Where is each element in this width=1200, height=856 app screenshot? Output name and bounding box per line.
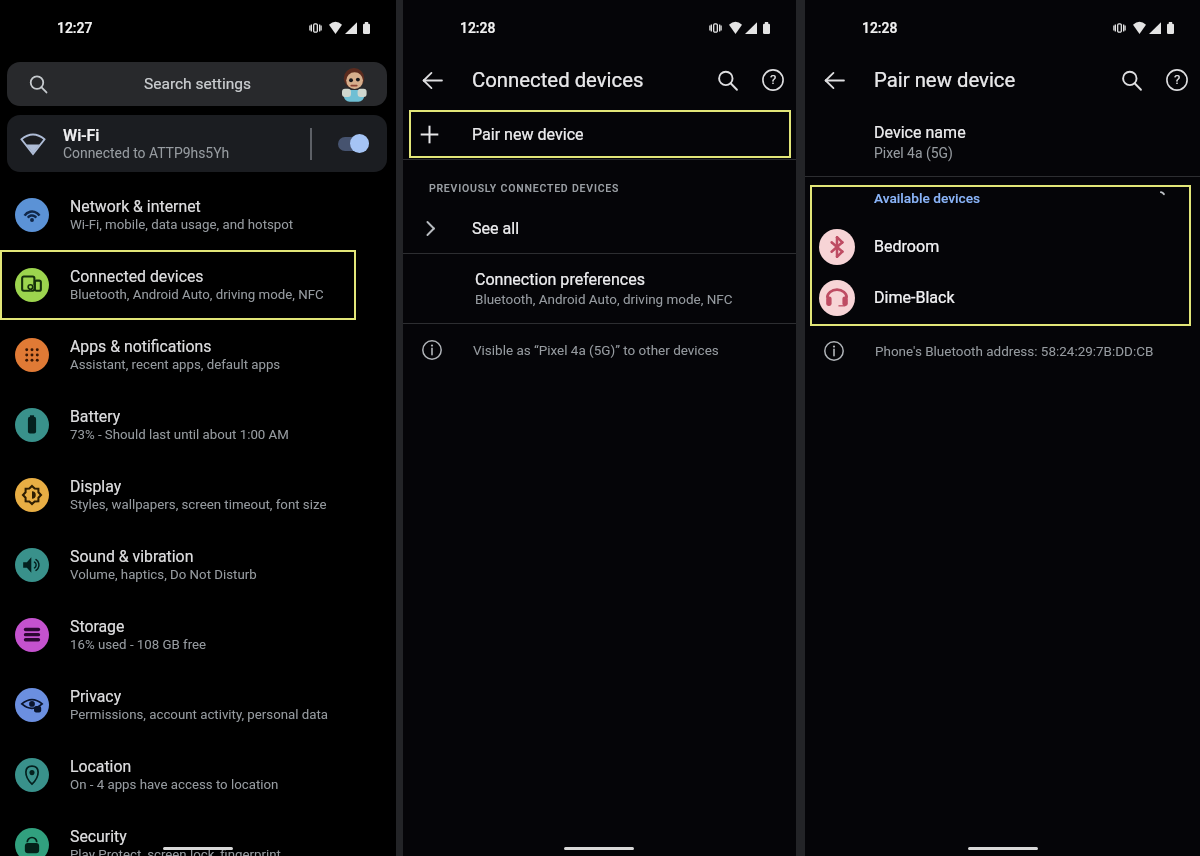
staticText: Play Protect, screen lock, fingerprint [70,847,281,856]
button[interactable]: Search settings [7,62,387,106]
staticText: Wi-Fi [63,126,100,145]
other: Search [29,75,48,94]
staticText: 73% - Should last until about 1:00 AM [70,427,289,443]
staticText: Visible as “Pixel 4a (5G)” to other devi… [473,342,719,358]
button[interactable]: Back [413,61,451,99]
button[interactable]: Back [815,61,853,99]
staticText: ? [1174,72,1181,88]
staticText: PREVIOUSLY CONNECTED DEVICES [429,182,620,194]
staticText: 12:27 [57,20,93,36]
staticText: 12:28 [460,20,496,36]
button[interactable]: Search [1112,61,1150,99]
staticText: Pair new device [874,68,1112,92]
button[interactable]: Search [708,61,746,99]
button[interactable]: Sound & vibration [0,530,396,600]
staticText: Connected devices [70,267,204,286]
staticText: Display [70,477,122,496]
staticText: Assistant, recent apps, default apps [70,357,281,373]
button[interactable]: Display [0,460,396,530]
staticText: ? [770,72,777,88]
staticText: Connection preferences [475,270,645,289]
button[interactable]: Wi-Fi [7,115,387,172]
staticText: Bedroom [874,237,940,256]
staticText: See all [472,219,520,237]
staticText: Storage [70,617,125,636]
staticText: Sound & vibration [70,547,194,566]
staticText: 12:28 [862,20,898,36]
button[interactable]: Connection preferences [403,254,796,323]
staticText: Battery [70,407,121,426]
button[interactable]: Security [0,810,396,856]
staticText: Security [70,827,127,846]
staticText: Dime-Black [874,288,955,307]
staticText: Phone's Bluetooth address: 58:24:29:7B:D… [875,343,1154,359]
button[interactable]: Battery [0,390,396,460]
staticText: Permissions, account activity, personal … [70,707,329,723]
button[interactable]: Apps & notifications [0,320,396,390]
button[interactable]: Wi-Fi toggle [338,134,369,153]
staticText: Connected devices [472,68,708,92]
staticText: Bluetooth, Android Auto, driving mode, N… [475,291,733,307]
staticText: Pair new device [472,125,584,144]
staticText: Styles, wallpapers, screen timeout, font… [70,497,327,513]
staticText: Apps & notifications [70,337,212,356]
staticText: Search settings [144,75,251,93]
staticText: Connected to ATTP9hs5Yh [63,145,230,161]
staticText: Device name [874,123,966,142]
button[interactable]: Help [754,61,792,99]
button[interactable]: Pair new device [409,110,791,158]
button[interactable]: Network & internet [0,180,396,250]
staticText: On - 4 apps have access to location [70,777,279,793]
staticText: Available devices [874,190,981,206]
staticText: Network & internet [70,197,201,216]
button[interactable]: Bedroom [810,221,1191,272]
button[interactable]: Dime-Black [810,272,1191,323]
button[interactable]: Connected devices [0,250,396,320]
button[interactable]: Account [339,67,369,101]
staticText: Pixel 4a (5G) [874,145,953,161]
staticText: Bluetooth, Android Auto, driving mode, N… [70,287,324,303]
staticText: 16% used - 108 GB free [70,637,207,653]
staticText: Volume, haptics, Do Not Disturb [70,567,257,583]
button[interactable]: Help [1158,61,1196,99]
staticText: Location [70,757,132,776]
staticText: Wi-Fi, mobile, data usage, and hotspot [70,217,294,233]
button[interactable]: Location [0,740,396,810]
staticText: Privacy [70,687,122,706]
button[interactable]: Privacy [0,670,396,740]
button[interactable]: Storage [0,600,396,670]
button[interactable]: See all [403,219,796,237]
